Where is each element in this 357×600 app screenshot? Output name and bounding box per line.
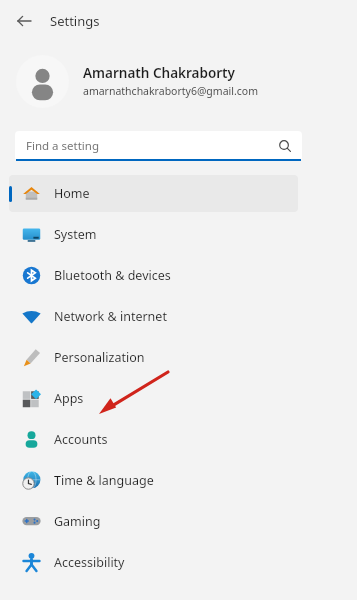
button[interactable]: System [0,214,357,255]
button[interactable]: Accessibility [0,542,357,583]
staticText: Bluetooth & devices [54,267,171,284]
button[interactable]: Network & internet [0,296,357,337]
button[interactable]: Apps [0,378,357,419]
button[interactable]: Accounts [0,419,357,460]
staticText: Accounts [54,431,108,448]
staticText: Time & language [54,472,154,489]
button[interactable]: Time & language [0,460,357,501]
button[interactable]: Home [0,173,357,214]
button[interactable]: Personalization [0,337,357,378]
staticText: Apps [54,390,84,407]
staticText: Find a setting [26,138,279,154]
staticText: Settings [50,12,100,30]
button[interactable]: Amarnath Chakraborty [0,42,357,120]
button[interactable]: Bluetooth & devices [0,255,357,296]
staticText: Personalization [54,349,145,366]
staticText: Gaming [54,513,101,530]
staticText: System [54,226,97,243]
staticText: Amarnath Chakraborty [83,64,235,82]
staticText: Accessibility [54,554,125,571]
button[interactable]: Gaming [0,501,357,542]
staticText: Network & internet [54,308,167,325]
staticText: Home [54,185,90,202]
staticText: amarnathchakraborty6@gmail.com [83,84,258,98]
button[interactable]: Back [10,7,38,35]
button[interactable]: Find a setting [15,131,302,161]
